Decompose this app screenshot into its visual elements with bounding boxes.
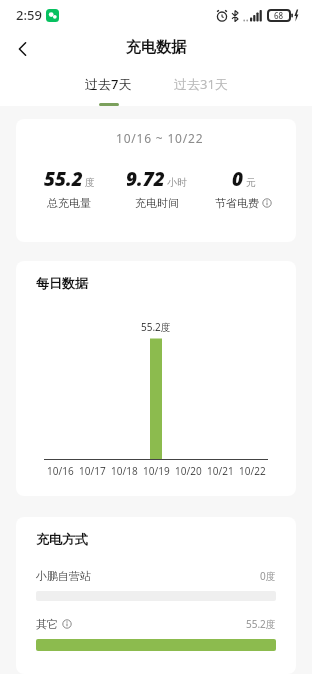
button[interactable]: 过去31天 <box>174 75 228 106</box>
button[interactable]: 过去7天 <box>85 75 132 106</box>
staticText: 总充电量 <box>47 196 91 210</box>
staticText: 55.2度 <box>246 617 276 631</box>
staticText: 充电时间 <box>135 196 179 210</box>
staticText: 10/22 <box>239 464 266 478</box>
staticText: 每日数据 <box>36 275 88 291</box>
staticText: 68 <box>274 10 284 21</box>
staticText: 10/18 <box>111 464 138 478</box>
staticText: 小时 <box>167 176 187 189</box>
staticText: 55.2度 <box>141 320 171 334</box>
button[interactable] <box>8 33 36 61</box>
staticText: 2:59 <box>16 6 42 24</box>
staticText: 度 <box>85 176 95 189</box>
staticText: 元 <box>246 176 256 189</box>
staticText: 10/16 ~ 10/22 <box>116 130 204 146</box>
staticText: 10/17 <box>79 464 106 478</box>
staticText: 节省电费 <box>215 196 259 210</box>
staticText: 过去31天 <box>174 75 228 93</box>
staticText: 充电数据 <box>126 38 186 57</box>
staticText: 10/19 <box>143 464 170 478</box>
staticText: 10/20 <box>175 464 202 478</box>
staticText: 充电方式 <box>36 531 88 547</box>
staticText: 小鹏自营站 <box>36 569 91 583</box>
staticText: 其它 <box>36 617 58 631</box>
staticText: 10/21 <box>207 464 234 478</box>
staticText: 0 <box>232 166 244 192</box>
staticText: 0度 <box>260 569 276 583</box>
staticText: 10/16 <box>47 464 74 478</box>
staticText: 9.72 <box>126 166 165 192</box>
staticText: 55.2 <box>44 166 83 192</box>
staticText: 过去7天 <box>85 75 132 93</box>
